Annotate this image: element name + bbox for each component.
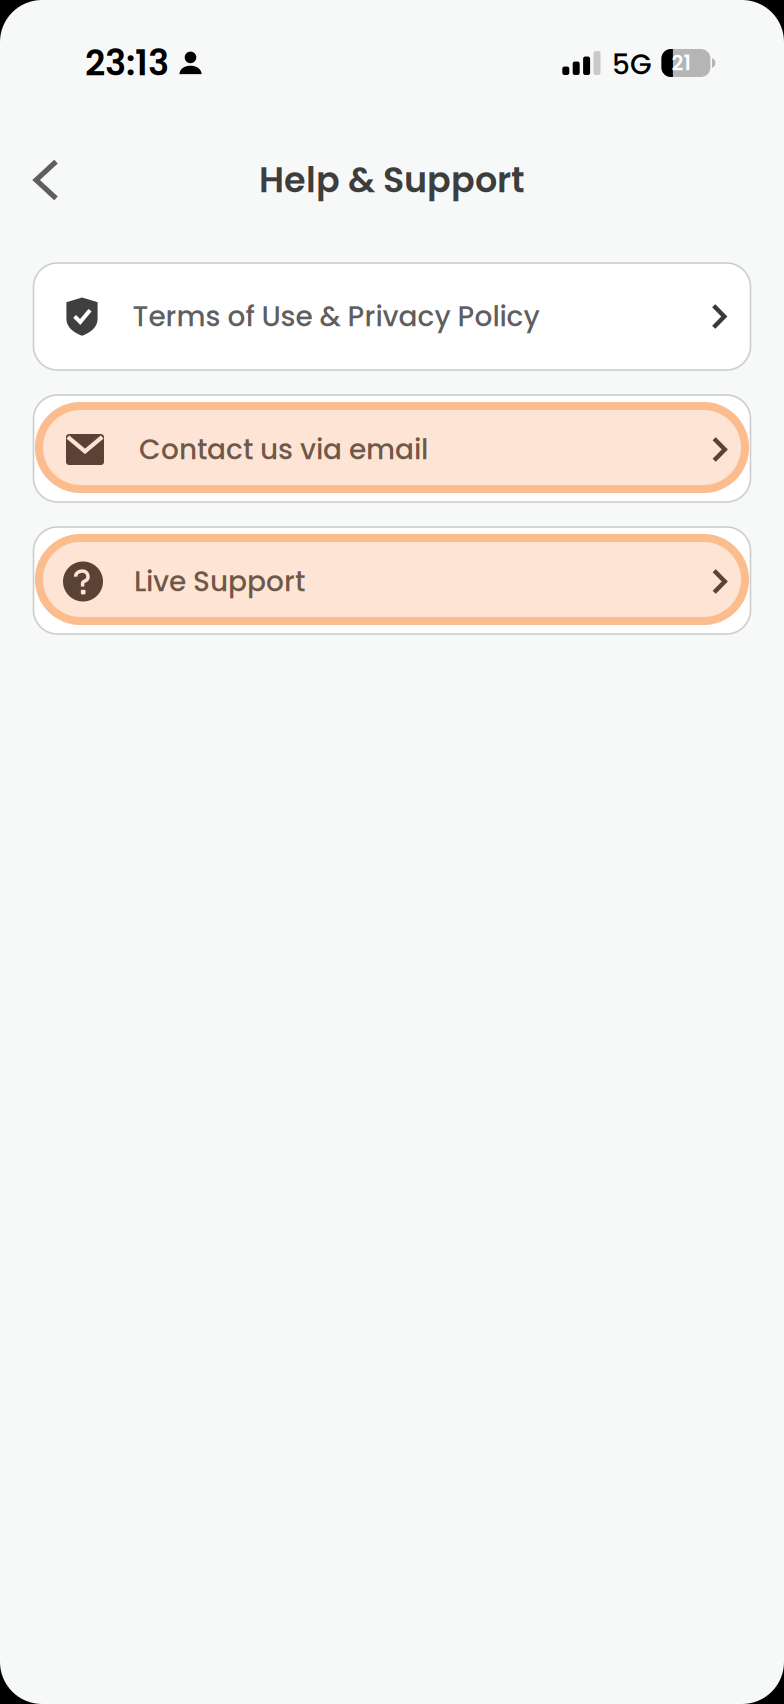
staticText: 21 xyxy=(671,48,690,77)
button[interactable]: Contact us via email xyxy=(33,395,750,502)
staticText: 5G xyxy=(612,45,652,84)
staticText: 23:13 xyxy=(85,38,169,88)
staticText: Terms of Use & Privacy Policy xyxy=(132,297,539,336)
button[interactable]: Terms of Use & Privacy Policy xyxy=(33,263,750,370)
button[interactable]: Back xyxy=(17,151,75,209)
button[interactable]: Live Support xyxy=(33,527,750,634)
staticText: Live Support xyxy=(134,562,305,601)
staticText: Contact us via email xyxy=(139,430,428,469)
staticText: Help & Support xyxy=(259,155,525,204)
